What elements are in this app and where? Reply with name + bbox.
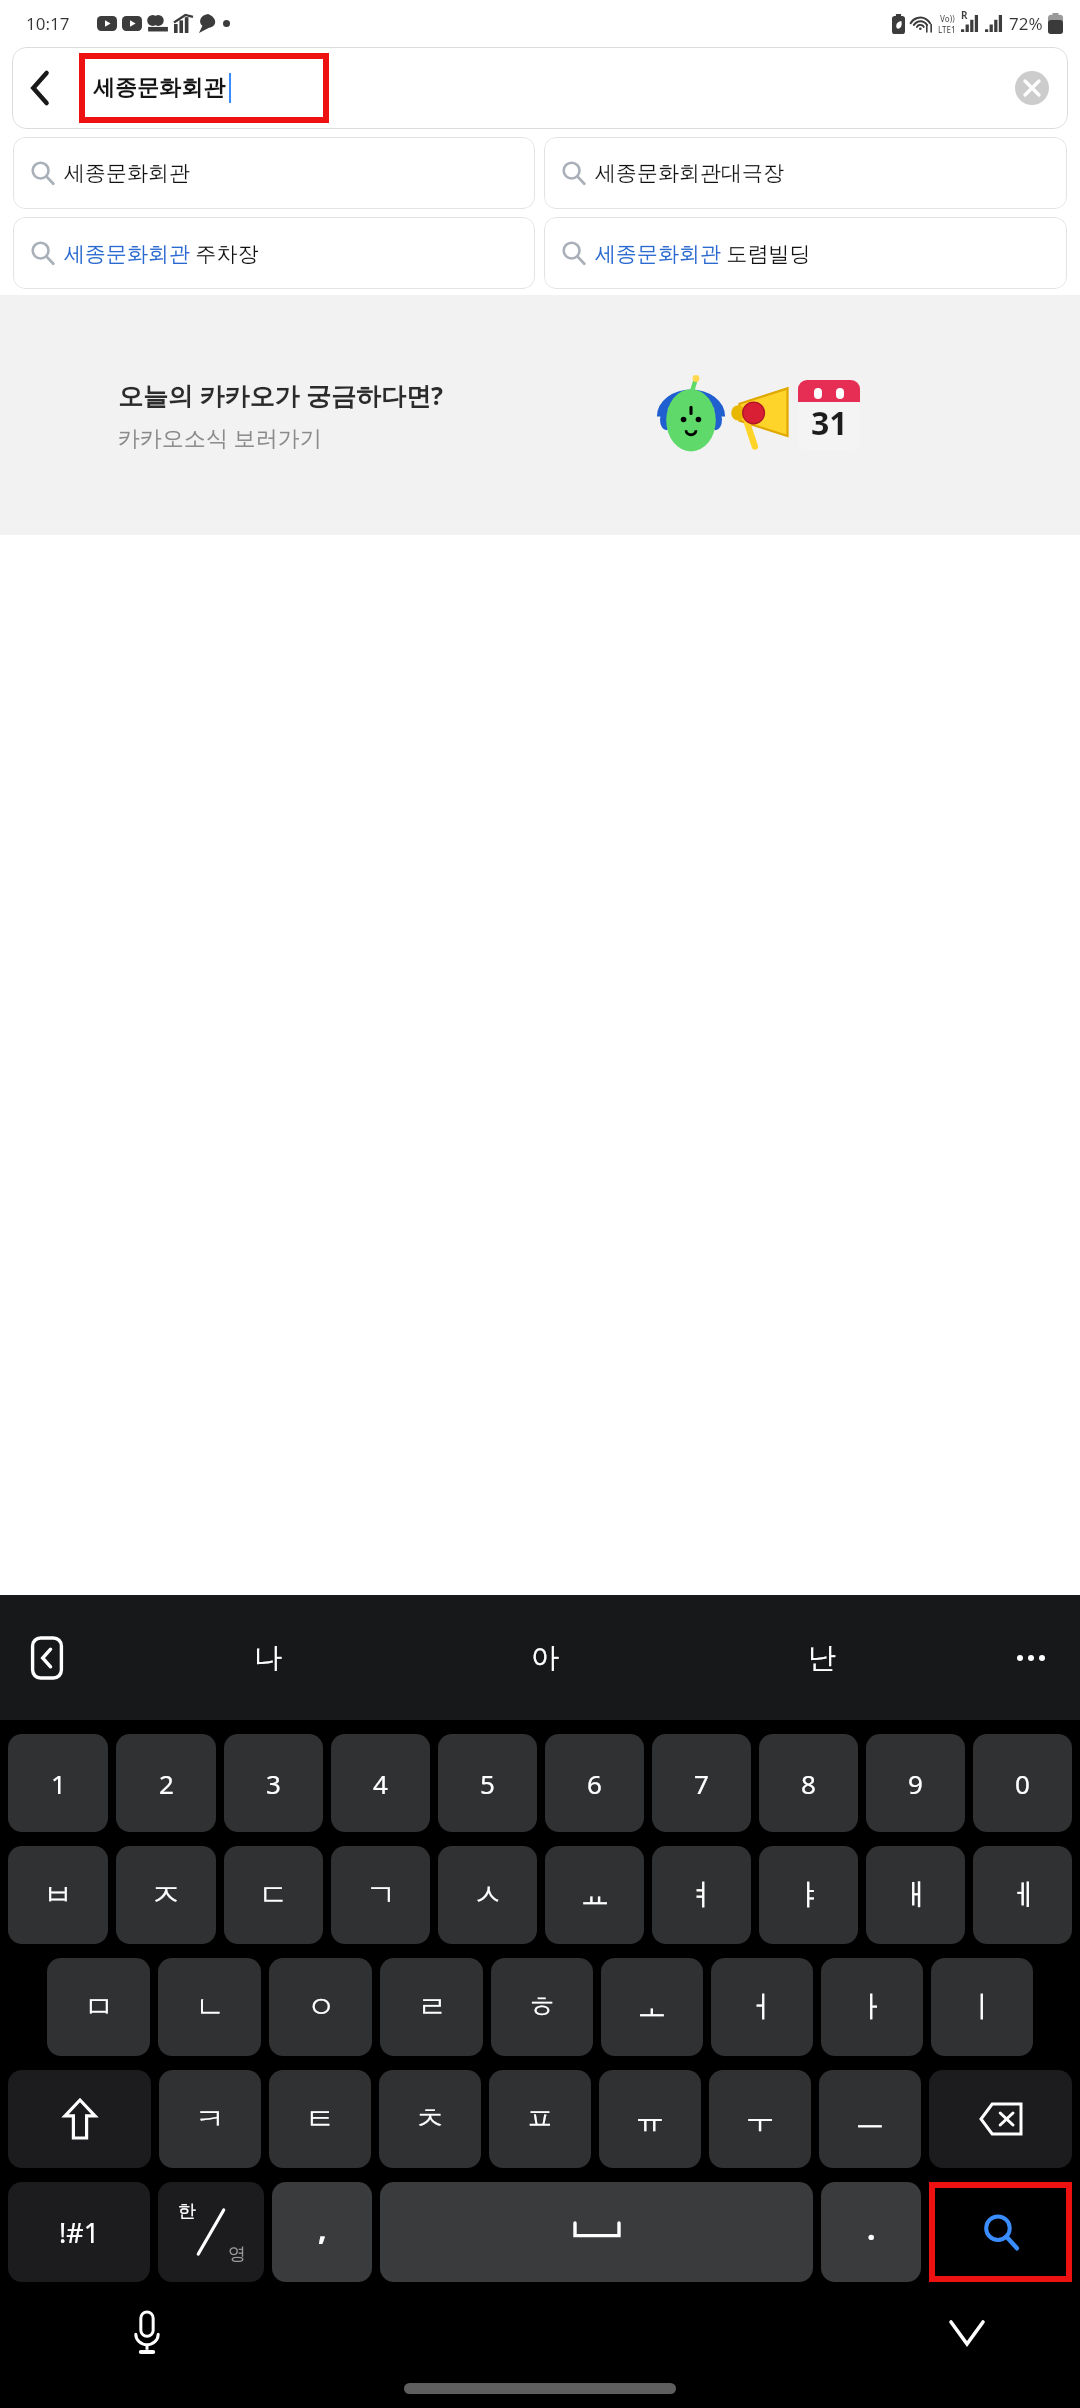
staticText: ㄹ [417, 1988, 447, 2026]
staticText: ㅑ [794, 1876, 824, 1914]
button[interactable]: 세종문화회관 도렴빌딩 [544, 217, 1067, 289]
staticText: 4 [373, 1766, 388, 1801]
button[interactable]: ㅊ [379, 2070, 481, 2168]
button[interactable]: ㅛ [545, 1846, 644, 1944]
staticText: !#1 [59, 2214, 100, 2251]
staticText: ㅌ [305, 2100, 335, 2138]
staticText: ㅔ [1008, 1876, 1038, 1914]
staticText: ㅁ [84, 1988, 114, 2026]
staticText: 세종문화회관 주차장 [64, 239, 259, 268]
button[interactable]: 5 [438, 1734, 537, 1832]
button[interactable]: Hide keyboard [940, 2306, 994, 2360]
button[interactable]: 세종문화회관대극장 [544, 137, 1067, 209]
button[interactable]: Backspace [929, 2070, 1072, 2168]
button[interactable]: ㅕ [652, 1846, 751, 1944]
button[interactable]: Search [929, 2182, 1072, 2282]
staticText: 1 [51, 1766, 66, 1801]
button[interactable]: 오늘의 카카오가 궁금하다면? [0, 295, 1080, 535]
button[interactable]: Clear text [1010, 66, 1054, 110]
staticText: 72% [1009, 12, 1043, 35]
button[interactable]: More options [1008, 1635, 1054, 1681]
button[interactable]: 4 [331, 1734, 430, 1832]
button[interactable]: 0 [973, 1734, 1072, 1832]
button[interactable]: 8 [759, 1734, 858, 1832]
button[interactable]: 1 [8, 1734, 108, 1832]
button[interactable]: ㄴ [158, 1958, 261, 2056]
staticText: , [318, 2208, 327, 2249]
button[interactable]: ㅏ [821, 1958, 923, 2056]
staticText: 오늘의 카카오가 궁금하다면? [118, 378, 443, 412]
button[interactable]: ㄹ [380, 1958, 483, 2056]
button[interactable]: ㅂ [8, 1846, 108, 1944]
staticText: ㅍ [525, 2100, 555, 2138]
staticText: 세종문화회관 [64, 160, 190, 186]
button[interactable]: ㅔ [973, 1846, 1072, 1944]
button[interactable]: ㅑ [759, 1846, 858, 1944]
button[interactable]: Shift [8, 2070, 151, 2168]
staticText: LTE1 [938, 24, 956, 35]
button[interactable]: ㅍ [489, 2070, 591, 2168]
button[interactable]: ㅣ [931, 1958, 1033, 2056]
staticText: ㄷ [259, 1876, 289, 1914]
staticText: ㅜ [745, 2100, 775, 2138]
button[interactable]: 2 [116, 1734, 216, 1832]
staticText: 3 [266, 1766, 281, 1801]
button[interactable]: 난 [683, 1595, 960, 1720]
button[interactable]: 6 [545, 1734, 644, 1832]
button[interactable]: 7 [652, 1734, 751, 1832]
button[interactable]: ㅇ [269, 1958, 372, 2056]
button[interactable]: ㅓ [711, 1958, 813, 2056]
staticText: ㅋ [195, 2100, 225, 2138]
staticText: 7 [694, 1766, 709, 1801]
button[interactable]: !#1 [8, 2182, 150, 2282]
button[interactable]: ㅈ [116, 1846, 216, 1944]
staticText: 10:17 [26, 12, 70, 35]
staticText: 한 [178, 2200, 196, 2223]
staticText: 0 [1015, 1766, 1030, 1801]
button[interactable]: Previous [24, 1635, 70, 1681]
staticText: ㅛ [580, 1876, 610, 1914]
staticText: ㅣ [967, 1988, 997, 2026]
staticText: ㅕ [687, 1876, 717, 1914]
staticText: ㄱ [366, 1876, 396, 1914]
button[interactable]: Language [158, 2182, 264, 2282]
staticText: 6 [587, 1766, 602, 1801]
button[interactable]: ㅗ [601, 1958, 703, 2056]
button[interactable]: . [821, 2182, 921, 2282]
button[interactable]: ㅡ [819, 2070, 921, 2168]
button[interactable]: ㅎ [491, 1958, 593, 2056]
button[interactable]: ㅜ [709, 2070, 811, 2168]
button[interactable]: 3 [224, 1734, 323, 1832]
button[interactable]: 세종문화회관 주차장 [13, 217, 535, 289]
button[interactable]: ㅐ [866, 1846, 965, 1944]
staticText: 영 [228, 2243, 246, 2266]
staticText: . [867, 2208, 876, 2249]
button[interactable]: ㅁ [47, 1958, 150, 2056]
staticText: ㅇ [306, 1988, 336, 2026]
staticText: 난 [808, 1640, 836, 1675]
button[interactable]: 세종문화회관 [13, 137, 535, 209]
button[interactable]: ㅠ [599, 2070, 701, 2168]
button[interactable]: 9 [866, 1734, 965, 1832]
staticText: ㅐ [901, 1876, 931, 1914]
button[interactable]: 나 [130, 1595, 406, 1720]
button[interactable]: 세종문화회관 [79, 53, 329, 123]
button[interactable]: Voice input [120, 2306, 174, 2360]
staticText: ㅡ [855, 2100, 885, 2138]
button[interactable]: 아 [406, 1595, 683, 1720]
staticText: 8 [801, 1766, 816, 1801]
staticText: ㅈ [151, 1876, 181, 1914]
button[interactable]: Back [12, 60, 68, 116]
button[interactable]: ㅋ [159, 2070, 261, 2168]
staticText: ㅊ [415, 2100, 445, 2138]
staticText: Vo)) [940, 13, 955, 24]
button[interactable]: ㄷ [224, 1846, 323, 1944]
button[interactable]: Space [380, 2182, 813, 2282]
button[interactable]: ㄱ [331, 1846, 430, 1944]
staticText: ㄴ [195, 1988, 225, 2026]
button[interactable]: , [272, 2182, 372, 2282]
staticText: ㅎ [527, 1988, 557, 2026]
button[interactable]: ㅌ [269, 2070, 371, 2168]
staticText: 카카오소식 보러가기 [118, 422, 322, 452]
button[interactable]: ㅅ [438, 1846, 537, 1944]
